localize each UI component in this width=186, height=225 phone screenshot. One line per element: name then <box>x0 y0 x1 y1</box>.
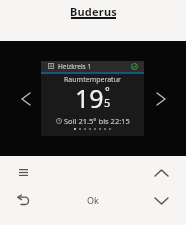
staticText: ° <box>105 83 110 98</box>
button[interactable]: Ok <box>79 192 107 208</box>
staticText: Buderus <box>70 4 117 19</box>
staticText: 19 <box>75 81 104 115</box>
staticText: 5 <box>104 95 111 110</box>
button[interactable]: Next <box>151 89 171 109</box>
staticText: Raumtemperatur <box>64 75 121 85</box>
staticText: Soll 21.5° bis 22:15 <box>64 116 130 126</box>
button[interactable]: Down <box>150 190 172 212</box>
button[interactable]: Back <box>12 189 34 211</box>
staticText: Heizkreis 1 <box>58 62 92 71</box>
staticText: Ok <box>87 194 99 206</box>
button[interactable]: Heizkreis 1 <box>41 61 144 136</box>
button[interactable]: Previous <box>16 89 36 109</box>
button[interactable]: Menu <box>12 161 34 183</box>
button[interactable]: Up <box>150 162 172 184</box>
